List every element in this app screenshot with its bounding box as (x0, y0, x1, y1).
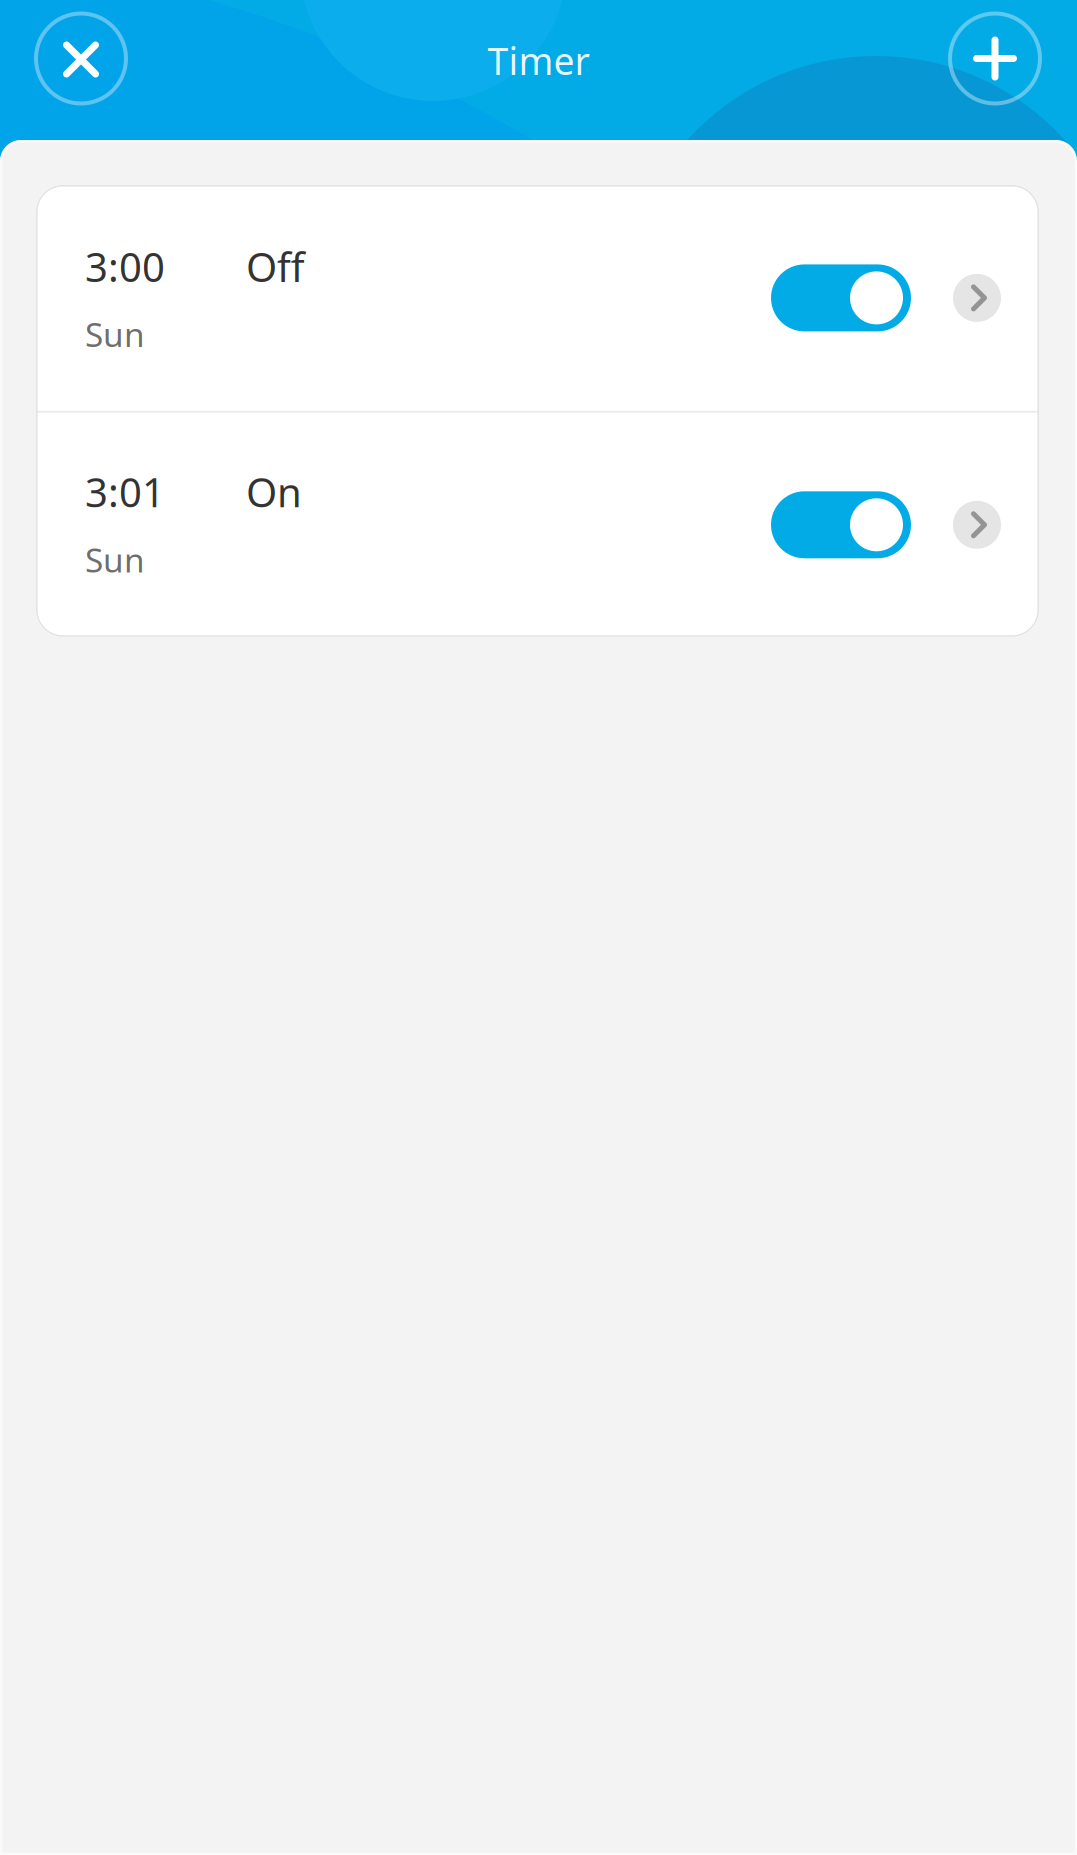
staticText: Sun (85, 537, 145, 582)
button[interactable]: 3:01 (36, 413, 1039, 637)
button[interactable]: Add timer (948, 11, 1042, 105)
button[interactable]: 3:00 (36, 185, 1039, 411)
staticText: On (246, 465, 302, 518)
staticText: Timer (487, 36, 589, 85)
staticText: 3:01 (85, 465, 165, 518)
staticText: Sun (85, 312, 145, 356)
staticText: Off (246, 240, 305, 293)
button[interactable]: Close (34, 11, 128, 105)
staticText: 3:00 (85, 240, 165, 293)
